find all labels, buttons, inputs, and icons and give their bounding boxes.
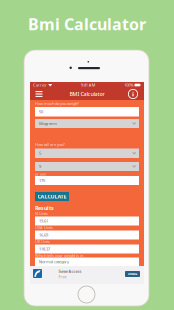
staticText: 175 xyxy=(39,178,45,183)
staticText: SI Units xyxy=(35,211,48,216)
staticText: 16.69 xyxy=(39,232,48,238)
staticText: SonarAccess xyxy=(58,268,81,274)
button[interactable]: Menu xyxy=(32,88,46,100)
staticText: INSTALL xyxy=(128,272,137,276)
button[interactable]: CALCULATE xyxy=(35,192,69,201)
staticText: Which tells your weight is in xyxy=(35,253,83,258)
staticText: Kilograms xyxy=(39,121,57,126)
staticText: 9 xyxy=(39,164,41,169)
staticText: USA Units xyxy=(35,225,53,230)
staticText: Free xyxy=(58,274,66,279)
staticText: UK Units xyxy=(35,239,50,244)
button[interactable]: 9 xyxy=(35,162,139,171)
staticText: 50 xyxy=(39,109,43,114)
staticText: Carrier xyxy=(33,82,47,88)
button[interactable]: 5 xyxy=(35,148,139,158)
staticText: 5 xyxy=(39,151,41,156)
staticText: CALCULATE xyxy=(37,193,66,200)
staticText: 19.61 xyxy=(39,218,48,224)
staticText: 9:41 AM xyxy=(81,82,96,88)
staticText: How much do you weigh? xyxy=(35,101,79,106)
staticText: How tall are you? xyxy=(35,142,65,147)
button[interactable]: About xyxy=(126,88,140,100)
button[interactable]: INSTALL xyxy=(125,271,140,277)
staticText: Results xyxy=(35,204,54,212)
staticText: 100% xyxy=(124,82,133,88)
button[interactable]: Kilograms xyxy=(35,119,139,128)
staticText: or use xyxy=(35,171,46,177)
staticText: 118.37 xyxy=(39,246,50,252)
staticText: BMI Calculator xyxy=(69,90,104,98)
staticText: Bmi Calculator xyxy=(28,13,146,35)
staticText: Normal category xyxy=(39,259,69,264)
